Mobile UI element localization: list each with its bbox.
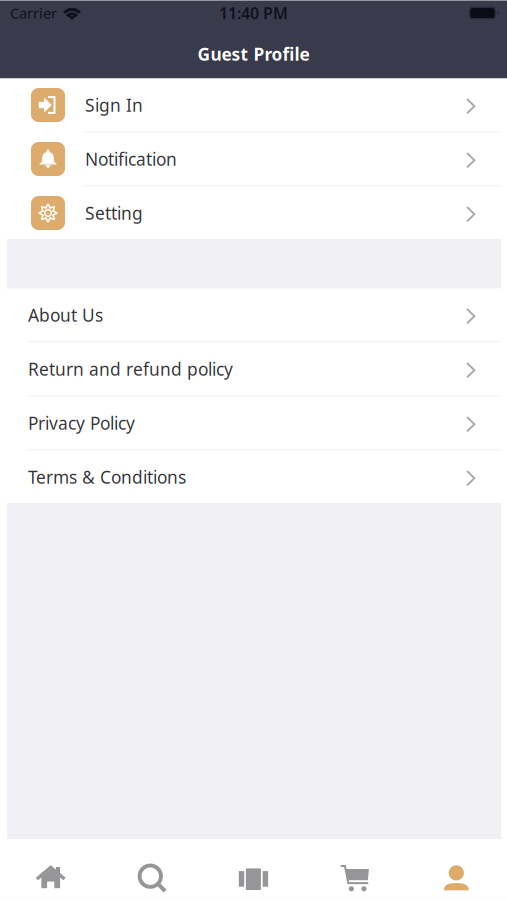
staticText: Notification [85,147,177,170]
button[interactable]: Home [0,839,101,899]
staticText: Terms & Conditions [28,465,186,488]
button[interactable]: Privacy Policy [0,396,507,450]
staticText: About Us [28,303,103,326]
staticText: Sign In [85,93,143,116]
staticText: Setting [85,201,143,224]
staticText: Guest Profile [197,42,309,65]
button[interactable]: Notification [0,132,507,186]
button[interactable]: About Us [0,288,507,342]
staticText: Privacy Policy [28,411,135,434]
button[interactable]: Profile [406,839,507,899]
button[interactable]: Setting [0,186,507,239]
button[interactable]: Search [101,839,203,899]
button[interactable]: Terms & Conditions [0,450,507,503]
button[interactable]: Cart [304,839,406,899]
button[interactable]: Collections [203,839,304,899]
staticText: 11:40 PM [219,2,288,24]
staticText: Return and refund policy [28,357,233,380]
button[interactable]: Sign In [0,78,507,132]
button[interactable]: Return and refund policy [0,342,507,396]
staticText: Carrier [10,3,57,23]
